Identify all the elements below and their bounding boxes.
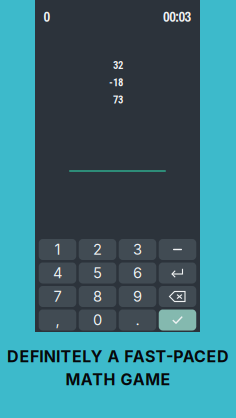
button[interactable]: 9	[119, 286, 156, 307]
staticText: 32	[113, 59, 123, 71]
button[interactable]: 6	[119, 262, 156, 283]
button[interactable]: Return	[159, 262, 196, 283]
button[interactable]: Submit answer	[159, 309, 196, 330]
staticText: 1	[54, 241, 60, 258]
button[interactable]: .	[119, 309, 156, 330]
staticText: ,	[55, 311, 59, 329]
staticText: 5	[93, 264, 102, 282]
staticText: MATH GAME	[65, 370, 171, 389]
staticText: DEFINITELY A FAST-PACED	[7, 347, 229, 366]
button[interactable]: Minus	[159, 239, 196, 260]
staticText: 9	[133, 288, 142, 305]
staticText: 7	[53, 288, 61, 305]
staticText: 73	[113, 94, 123, 106]
staticText: 8	[93, 288, 102, 305]
staticText: 0	[43, 7, 50, 26]
button[interactable]: 4	[39, 262, 76, 283]
staticText: .	[135, 311, 139, 329]
staticText: 3	[133, 241, 142, 258]
button[interactable]: 2	[79, 239, 116, 260]
button[interactable]: 5	[79, 262, 116, 283]
button[interactable]: 7	[39, 286, 76, 307]
button[interactable]: 3	[119, 239, 156, 260]
staticText: 4	[53, 264, 62, 282]
staticText: 6	[133, 264, 142, 282]
staticText: -18	[109, 76, 123, 89]
staticText: 2	[93, 241, 102, 258]
staticText: 0	[93, 311, 102, 329]
button[interactable]: 1	[39, 239, 76, 260]
button[interactable]: Delete	[159, 286, 196, 307]
button[interactable]: 8	[79, 286, 116, 307]
button[interactable]: ,	[39, 309, 76, 330]
button[interactable]: 0	[79, 309, 116, 330]
staticText: 00:03	[163, 7, 191, 26]
